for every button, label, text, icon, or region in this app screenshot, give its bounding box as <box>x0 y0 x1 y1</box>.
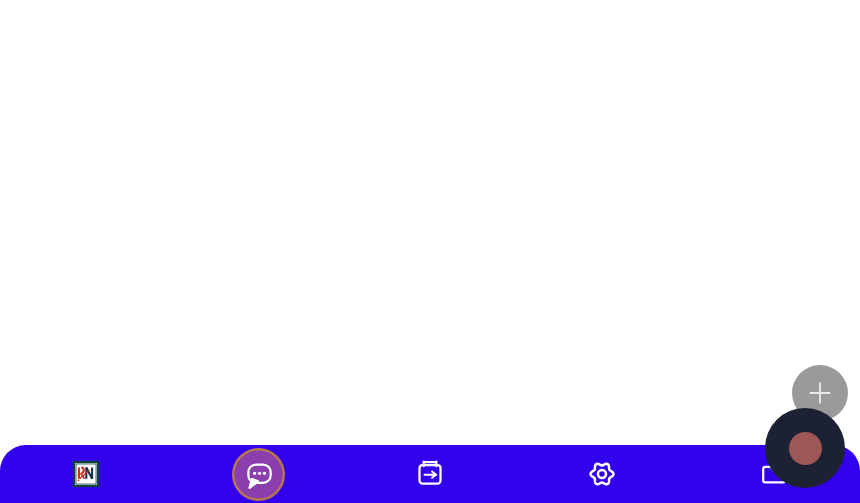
button[interactable]: Schedule <box>344 445 516 503</box>
button[interactable]: Record <box>765 408 845 488</box>
button[interactable]: Settings <box>516 445 688 503</box>
button[interactable]: Add <box>792 365 848 421</box>
button[interactable]: Files <box>688 445 860 503</box>
button[interactable]: Home <box>0 445 172 503</box>
button[interactable]: Chats <box>172 445 344 503</box>
